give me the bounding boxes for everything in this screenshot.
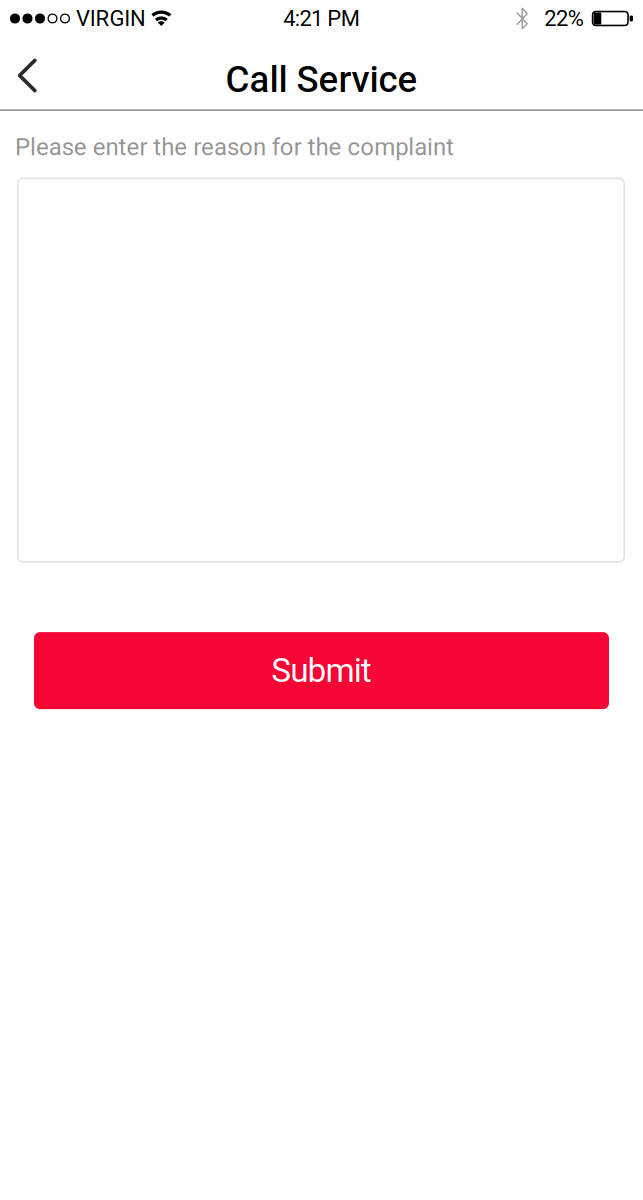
button[interactable]: Submit: [34, 632, 609, 709]
staticText: Call Service: [225, 58, 417, 101]
staticText: 22%: [544, 6, 584, 31]
button[interactable]: Back: [0, 38, 63, 109]
staticText: Please enter the reason for the complain…: [15, 133, 454, 161]
staticText: 4:21 PM: [283, 6, 360, 31]
staticText: Submit: [271, 651, 372, 690]
staticText: VIRGIN: [76, 6, 146, 31]
